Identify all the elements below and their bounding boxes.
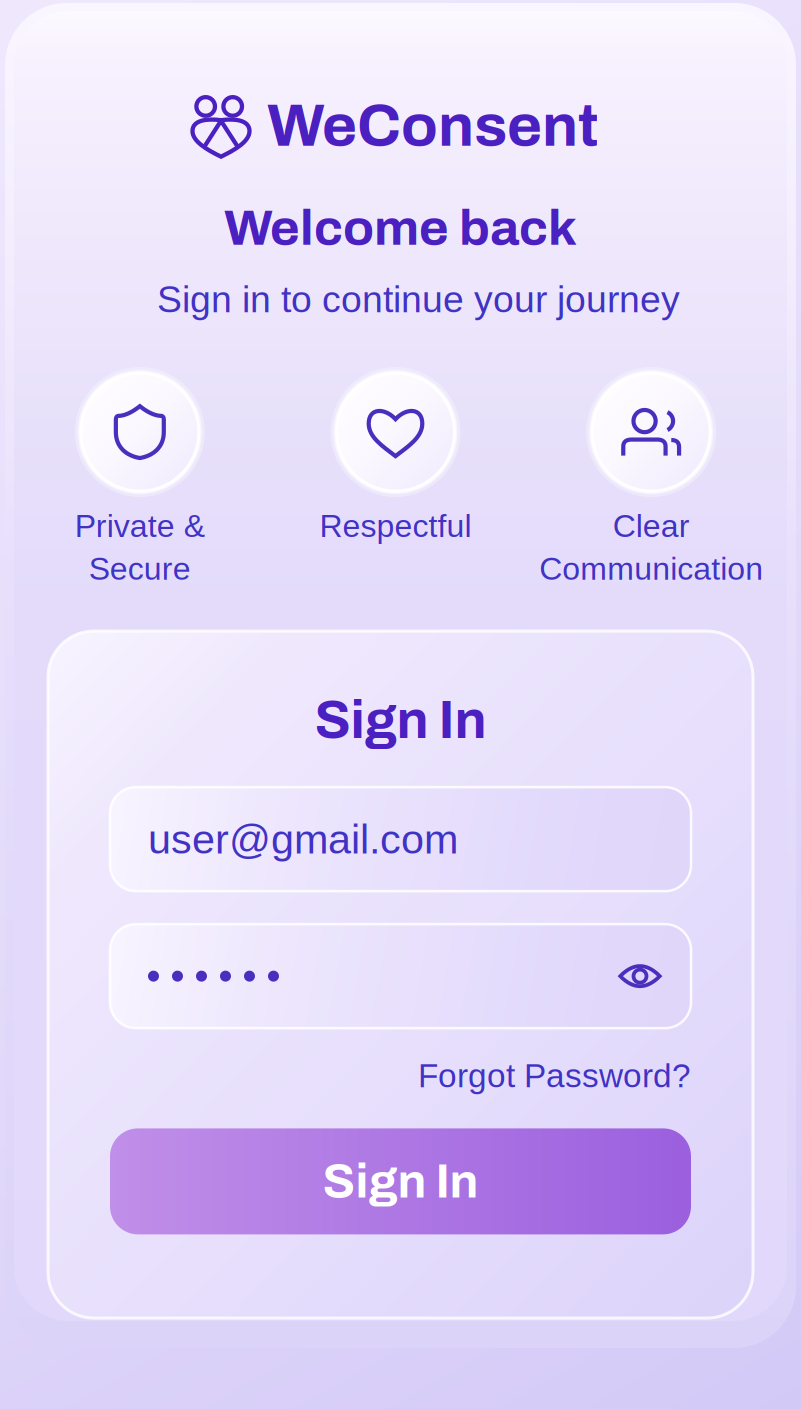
staticText: Secure bbox=[89, 551, 191, 587]
staticText: user@gmail.com bbox=[148, 816, 458, 862]
staticText: Clear bbox=[613, 508, 690, 544]
staticText: Sign In bbox=[322, 1155, 478, 1207]
button[interactable]: Forgot Password? bbox=[418, 1057, 691, 1094]
button[interactable]: Sign In bbox=[110, 1128, 691, 1234]
staticText: Sign In bbox=[314, 691, 486, 749]
staticText: Communication bbox=[539, 551, 763, 587]
staticText: Sign in to continue your journey bbox=[157, 278, 680, 320]
staticText: Respectful bbox=[319, 508, 471, 544]
staticText: WeConsent bbox=[267, 93, 599, 158]
staticText: Private & bbox=[75, 508, 205, 544]
staticText: Welcome back bbox=[224, 200, 577, 255]
staticText: Forgot Password? bbox=[418, 1057, 691, 1094]
